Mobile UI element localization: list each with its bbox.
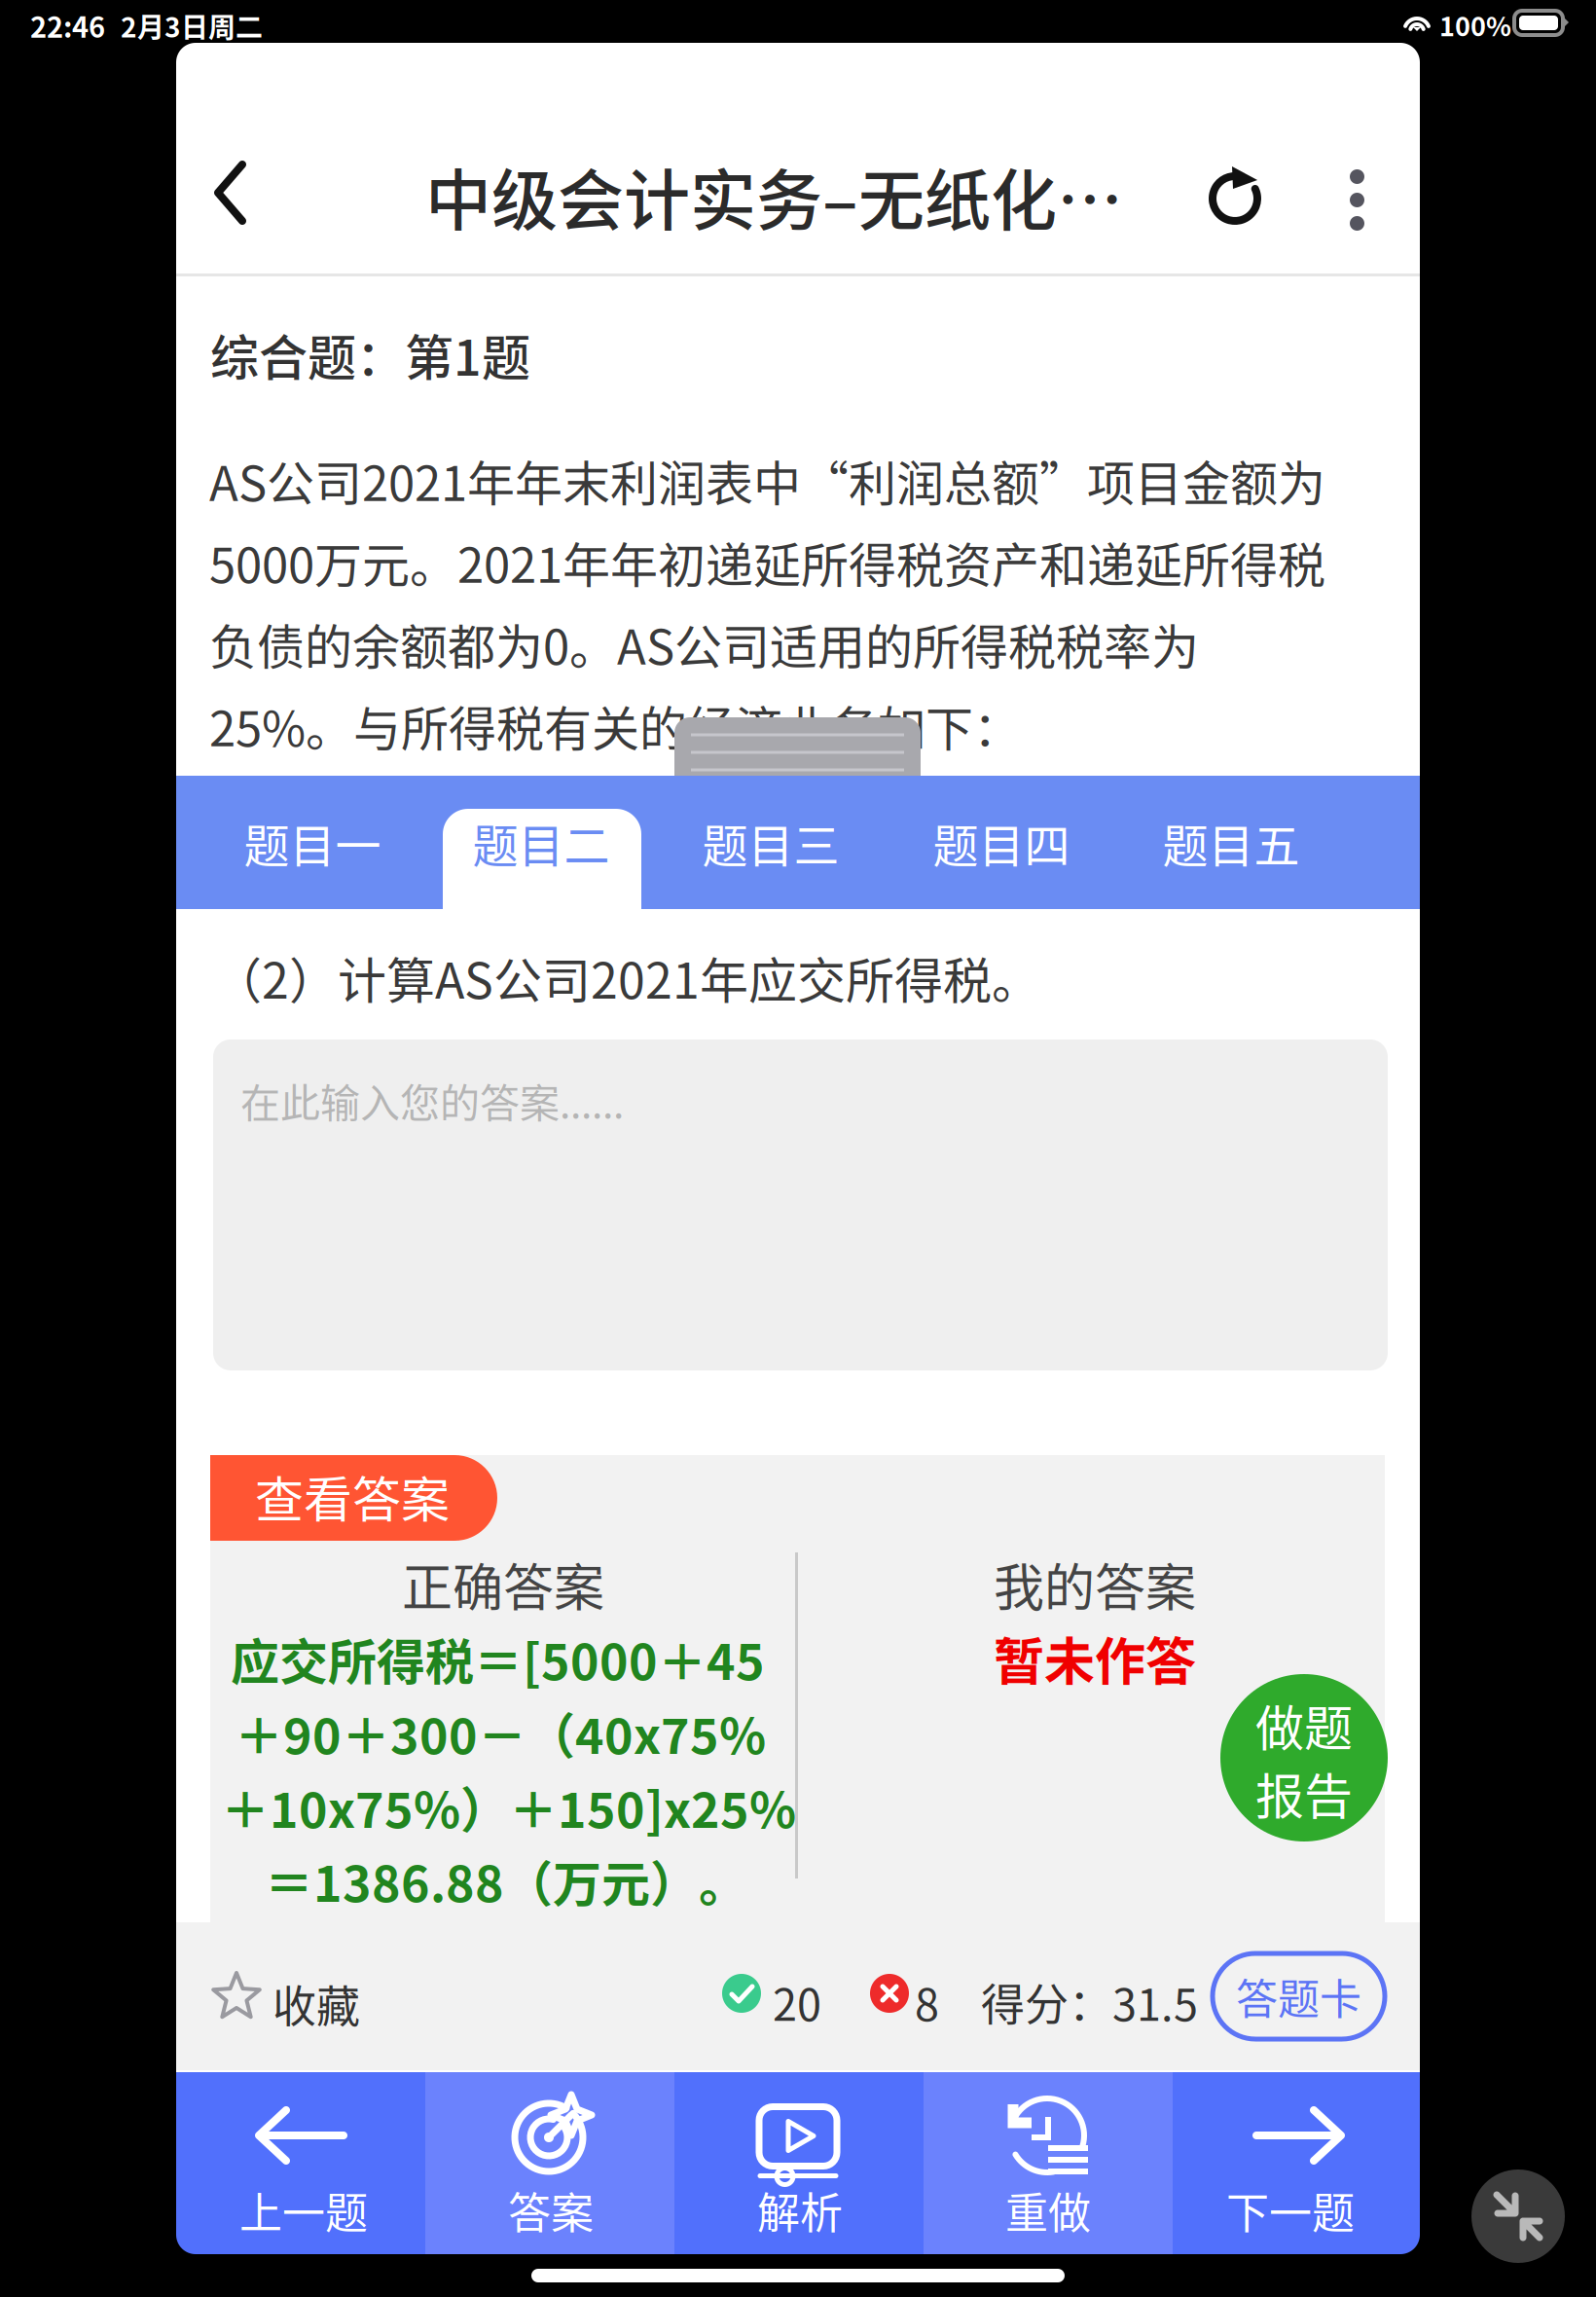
staticText: 25%。与所得税有关的经济业务如下：: [209, 691, 1021, 760]
button[interactable]: 题目一: [215, 776, 410, 909]
staticText: ＋90＋300－（40x75%: [235, 1697, 766, 1768]
button[interactable]: 收起: [1471, 2169, 1565, 2263]
button[interactable]: 答案: [425, 2072, 674, 2254]
staticText: 正确答案: [402, 1548, 604, 1621]
staticText: 题目二: [472, 809, 610, 876]
staticText: 答题卡: [1236, 1966, 1361, 2027]
staticText: 中级会计实务–无纸化…: [425, 148, 1123, 244]
button[interactable]: 重做: [924, 2072, 1173, 2254]
staticText: 2月3日周二: [121, 6, 263, 45]
staticText: 题目一: [244, 809, 381, 876]
staticText: 5000万元。2021年年初递延所得税资产和递延所得税: [209, 528, 1325, 597]
staticText: ＝1386.88（万元）。: [265, 1845, 747, 1916]
button[interactable]: 返回: [195, 129, 311, 256]
staticText: 8: [915, 1970, 939, 2033]
staticText: 20: [773, 1970, 821, 2033]
button[interactable]: 题目四: [904, 776, 1099, 909]
staticText: 查看答案: [255, 1461, 450, 1531]
staticText: 下一题: [1226, 2179, 1355, 2241]
button[interactable]: 答题卡: [1213, 1953, 1385, 2039]
button[interactable]: 更多: [1304, 129, 1411, 256]
staticText: 我的答案: [994, 1548, 1196, 1621]
button[interactable]: 题目三: [673, 776, 868, 909]
staticText: 负债的余额都为0。AS公司适用的所得税税率为: [209, 609, 1199, 678]
staticText: 收藏: [272, 1972, 360, 2035]
staticText: 题目五: [1162, 809, 1300, 876]
staticText: 解析: [757, 2179, 843, 2241]
staticText: ＋10x75%）＋150]x25%: [221, 1771, 796, 1842]
staticText: 得分：31.5: [981, 1970, 1198, 2033]
button[interactable]: 下一题: [1173, 2072, 1420, 2254]
button[interactable]: 上一题: [176, 2072, 425, 2254]
staticText: 综合题：第1题: [210, 319, 530, 390]
staticText: 做题: [1255, 1690, 1353, 1760]
button[interactable]: 题目二: [444, 776, 638, 909]
button[interactable]: 题目五: [1134, 776, 1328, 909]
staticText: 重做: [1005, 2179, 1091, 2241]
staticText: 报告: [1255, 1758, 1353, 1828]
staticText: 在此输入您的答案......: [240, 1072, 624, 1129]
button[interactable]: 刷新: [1179, 129, 1287, 256]
staticText: 答案: [508, 2179, 594, 2241]
staticText: （2）计算AS公司2021年应交所得税。: [213, 942, 1040, 1013]
staticText: 题目三: [702, 809, 839, 876]
staticText: AS公司2021年年末利润表中“利润总额”项目金额为: [209, 446, 1325, 515]
staticText: 上一题: [239, 2179, 368, 2241]
staticText: 应交所得税＝[5000＋45: [231, 1623, 765, 1694]
staticText: 22:46: [30, 5, 105, 46]
staticText: 暂未作答: [994, 1622, 1196, 1695]
button[interactable]: 收藏: [210, 1939, 444, 2056]
staticText: 题目四: [933, 809, 1070, 876]
staticText: 100%: [1439, 6, 1511, 44]
button[interactable]: 解析: [674, 2072, 924, 2254]
